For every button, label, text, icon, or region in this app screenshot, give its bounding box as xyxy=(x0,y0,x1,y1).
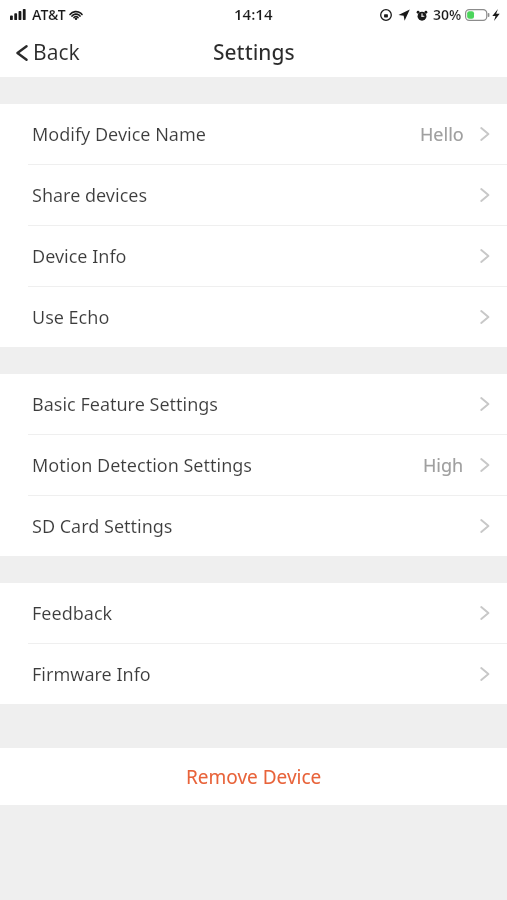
staticText: Hello xyxy=(420,122,464,147)
staticText: Motion Detection Settings xyxy=(32,453,252,478)
button[interactable]: Motion Detection Settings xyxy=(0,435,507,495)
staticText: AT&T xyxy=(32,5,66,24)
staticText: 30% xyxy=(433,5,462,24)
button[interactable]: Remove Device xyxy=(0,748,507,805)
button[interactable]: Firmware Info xyxy=(0,644,507,704)
staticText: SD Card Settings xyxy=(32,514,173,539)
staticText: Share devices xyxy=(32,183,148,208)
staticText: Firmware Info xyxy=(32,662,151,687)
staticText: Remove Device xyxy=(186,764,322,790)
button[interactable]: Feedback xyxy=(0,583,507,643)
staticText: Modify Device Name xyxy=(32,122,206,147)
staticText: 14:14 xyxy=(234,4,273,24)
button[interactable]: Basic Feature Settings xyxy=(0,374,507,434)
staticText: Basic Feature Settings xyxy=(32,392,218,417)
staticText: Feedback xyxy=(32,601,113,626)
button[interactable]: Device Info xyxy=(0,226,507,286)
staticText: High xyxy=(423,453,464,478)
staticText: Use Echo xyxy=(32,305,110,330)
staticText: Device Info xyxy=(32,244,127,269)
button[interactable]: Modify Device Name xyxy=(0,104,507,164)
button[interactable]: Back xyxy=(12,32,84,73)
button[interactable]: Use Echo xyxy=(0,287,507,347)
staticText: Back xyxy=(33,38,80,67)
button[interactable]: Share devices xyxy=(0,165,507,225)
staticText: Settings xyxy=(213,38,295,67)
button[interactable]: SD Card Settings xyxy=(0,496,507,556)
